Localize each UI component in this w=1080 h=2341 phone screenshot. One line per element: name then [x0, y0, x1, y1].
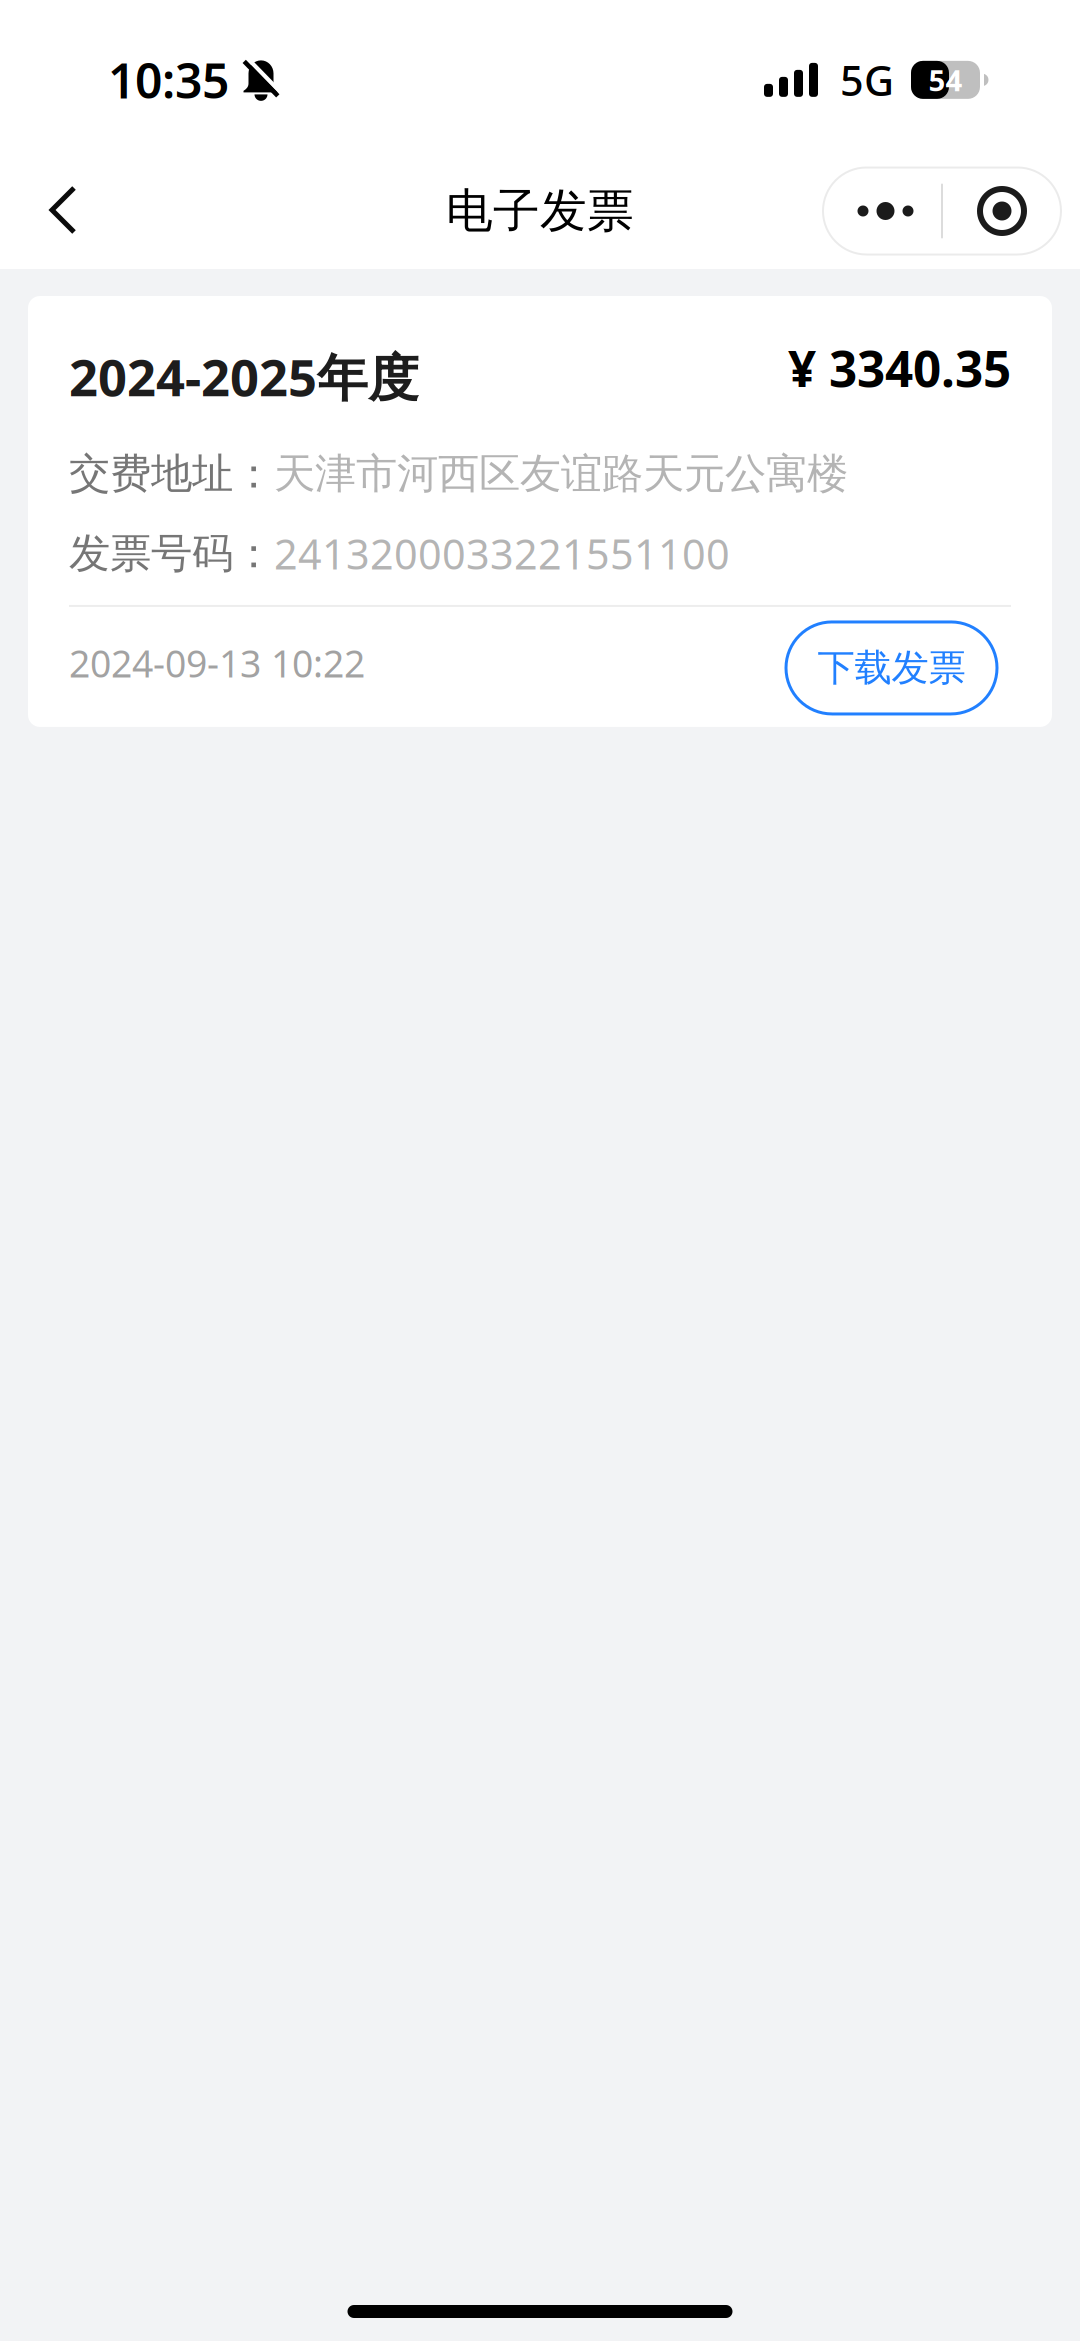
staticText: 10:35: [108, 48, 229, 112]
staticText: 交费地址：: [69, 448, 274, 499]
staticText: 2413200033221551100: [274, 526, 730, 581]
staticText: 发票号码：: [69, 528, 274, 579]
staticText: 电子发票: [446, 182, 634, 240]
staticText: 5G: [840, 52, 894, 107]
staticText: 54: [928, 60, 962, 99]
staticText: 2024-2025年度: [69, 343, 419, 410]
staticText: 天津市河西区友谊路天元公寓楼: [274, 448, 848, 499]
staticText: ¥ 3340.35: [788, 335, 1011, 400]
staticText: 2024-09-13 10:22: [69, 638, 365, 688]
button[interactable]: More options: [823, 167, 1061, 254]
button[interactable]: Back: [19, 166, 109, 256]
staticText: 下载发票: [817, 645, 965, 691]
button[interactable]: 下载发票: [786, 622, 997, 714]
